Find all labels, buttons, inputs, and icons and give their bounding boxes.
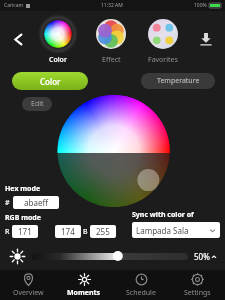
button[interactable]: Brightness <box>8 247 26 265</box>
staticText: Temperature <box>157 76 200 86</box>
button[interactable]: Edit <box>22 97 52 111</box>
button[interactable]: Schedule <box>113 270 169 300</box>
staticText: 11:32 AM <box>101 2 123 9</box>
button[interactable]: 255 <box>90 225 116 238</box>
staticText: Lampada Sala <box>136 225 209 236</box>
staticText: 174 <box>61 226 75 237</box>
button[interactable]: 171 <box>12 225 38 238</box>
staticText: R <box>5 227 10 237</box>
staticText: Effect <box>102 55 121 65</box>
button[interactable]: Moments <box>56 270 112 300</box>
staticText: 255 <box>96 226 110 237</box>
button[interactable]: 174 <box>55 225 81 238</box>
staticText: B <box>83 227 88 237</box>
button[interactable]: Settings <box>169 270 225 300</box>
staticText: Moments <box>67 288 101 297</box>
button[interactable]: Color <box>36 14 80 65</box>
staticText: Color <box>40 76 61 87</box>
staticText: Edit <box>31 99 44 109</box>
button[interactable] <box>32 249 188 263</box>
button[interactable]: Back <box>6 27 30 51</box>
staticText: Caricam <box>4 2 24 9</box>
staticText: 100% <box>194 2 207 9</box>
button[interactable]: Temperature <box>141 73 215 89</box>
button[interactable]: Effect <box>89 14 133 65</box>
button[interactable]: 50% <box>194 251 217 262</box>
staticText: abaeff <box>24 197 48 208</box>
staticText: 171 <box>18 226 32 237</box>
button[interactable]: abaeff <box>13 196 59 209</box>
button[interactable]: Favorites <box>141 14 185 65</box>
staticText: # <box>5 198 10 208</box>
button[interactable]: Lampada Sala <box>132 222 220 238</box>
staticText: Hex mode <box>5 184 41 194</box>
staticText: Schedule <box>126 288 156 297</box>
button[interactable]: Overview <box>0 270 56 300</box>
staticText: Color <box>49 55 67 65</box>
staticText: Overview <box>13 288 44 297</box>
button[interactable]: Color <box>12 72 88 90</box>
staticText: Settings <box>184 288 211 297</box>
staticText: Favorites <box>148 55 178 65</box>
staticText: RGB mode <box>5 213 41 223</box>
button[interactable]: Download <box>193 26 219 52</box>
staticText: Sync with color of <box>132 210 194 220</box>
staticText: 50% <box>194 251 210 262</box>
